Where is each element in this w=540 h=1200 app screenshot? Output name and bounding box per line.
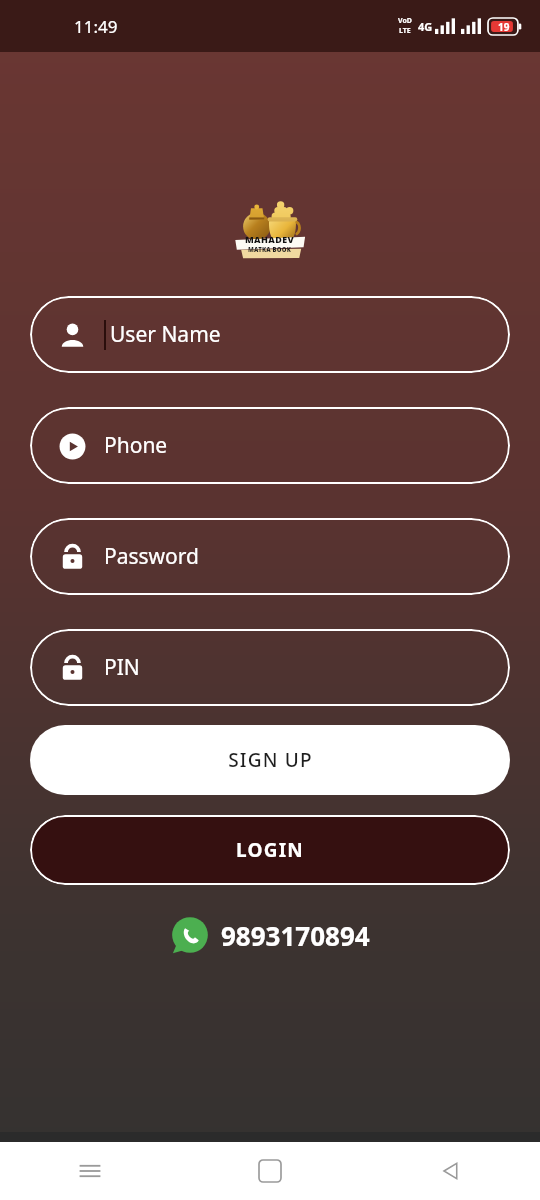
button[interactable]: Recent apps — [180, 1142, 360, 1200]
staticText: VoD — [398, 16, 412, 26]
staticText: 11:49 — [74, 15, 118, 38]
staticText: 9893170894 — [221, 918, 370, 953]
staticText: LTE — [399, 26, 411, 36]
button[interactable]: Password — [30, 518, 510, 595]
button[interactable]: WhatsApp — [0, 916, 540, 954]
button[interactable]: SIGN UP — [30, 725, 510, 795]
staticText: MAHADEV — [245, 233, 295, 245]
button[interactable]: LOGIN — [30, 815, 510, 885]
button[interactable]: Menu — [0, 1142, 180, 1200]
staticText: User Name — [110, 320, 221, 349]
staticText: Phone — [104, 431, 168, 460]
button[interactable]: PIN — [30, 629, 510, 706]
button[interactable]: Back — [360, 1142, 540, 1200]
button[interactable]: Phone — [30, 407, 510, 484]
staticText: MATKA BOOK — [248, 246, 292, 254]
staticText: 4G — [418, 19, 433, 34]
button[interactable]: User Name — [30, 296, 510, 373]
staticText: 19 — [498, 20, 510, 34]
staticText: PIN — [104, 653, 140, 682]
staticText: SIGN UP — [228, 747, 313, 773]
staticText: Password — [104, 542, 199, 571]
other: WhatsApp — [171, 916, 209, 954]
staticText: LOGIN — [236, 837, 304, 863]
